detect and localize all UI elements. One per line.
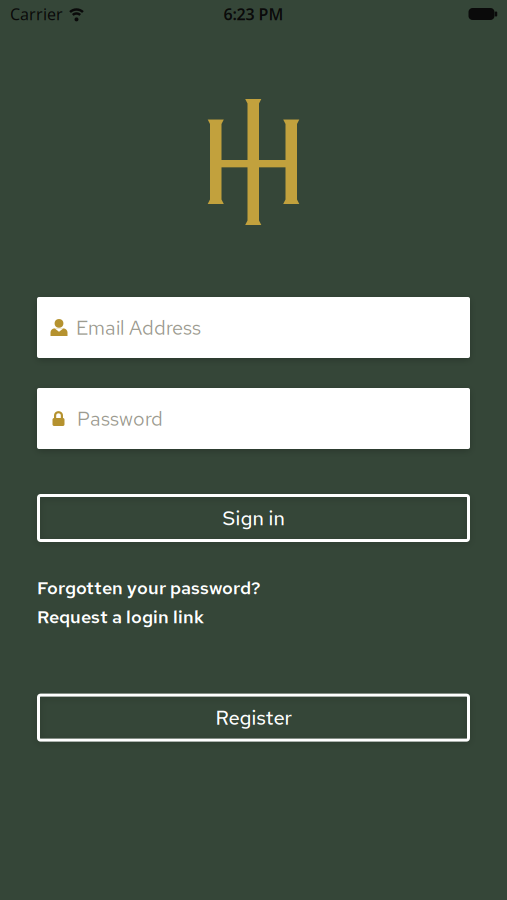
- button[interactable]: Forgotten your password?: [37, 576, 260, 600]
- button[interactable]: Sign in: [37, 494, 470, 542]
- staticText: Forgotten your password?: [37, 576, 260, 600]
- button[interactable]: Request a login link: [37, 605, 204, 629]
- button[interactable]: Register: [37, 694, 470, 742]
- staticText: Sign in: [222, 505, 284, 531]
- staticText: Request a login link: [37, 605, 204, 629]
- textField[interactable]: Email Address: [76, 314, 470, 341]
- staticText: Register: [215, 704, 291, 731]
- secureTextField[interactable]: Password: [77, 405, 470, 432]
- staticText: Email Address: [76, 314, 201, 341]
- staticText: Carrier: [10, 3, 63, 25]
- staticText: Password: [77, 405, 163, 432]
- staticText: 6:23 PM: [223, 3, 283, 25]
